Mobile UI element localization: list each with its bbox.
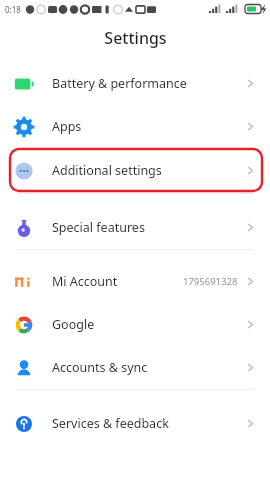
staticText: Google	[52, 316, 95, 333]
staticText: Special features	[52, 219, 145, 236]
button[interactable]: Additional settings	[0, 148, 270, 193]
button[interactable]: Special features	[0, 206, 270, 249]
button[interactable]: Mi Account	[0, 260, 270, 303]
button[interactable]: Accounts & sync	[0, 346, 270, 389]
staticText: Apps	[52, 118, 82, 135]
staticText: Battery & performance	[52, 75, 187, 92]
staticText: 1795691328	[183, 275, 238, 288]
staticText: Services & feedback	[52, 415, 169, 432]
staticText: Accounts & sync	[52, 359, 148, 376]
button[interactable]: Services & feedback	[0, 402, 270, 445]
button[interactable]: Google	[0, 303, 270, 346]
button[interactable]: Apps	[0, 105, 270, 148]
button[interactable]: Battery & performance	[0, 62, 270, 105]
staticText: 0:18	[5, 4, 21, 15]
staticText: Settings	[104, 27, 167, 49]
staticText: Mi Account	[52, 273, 118, 290]
staticText: Additional settings	[52, 162, 162, 179]
